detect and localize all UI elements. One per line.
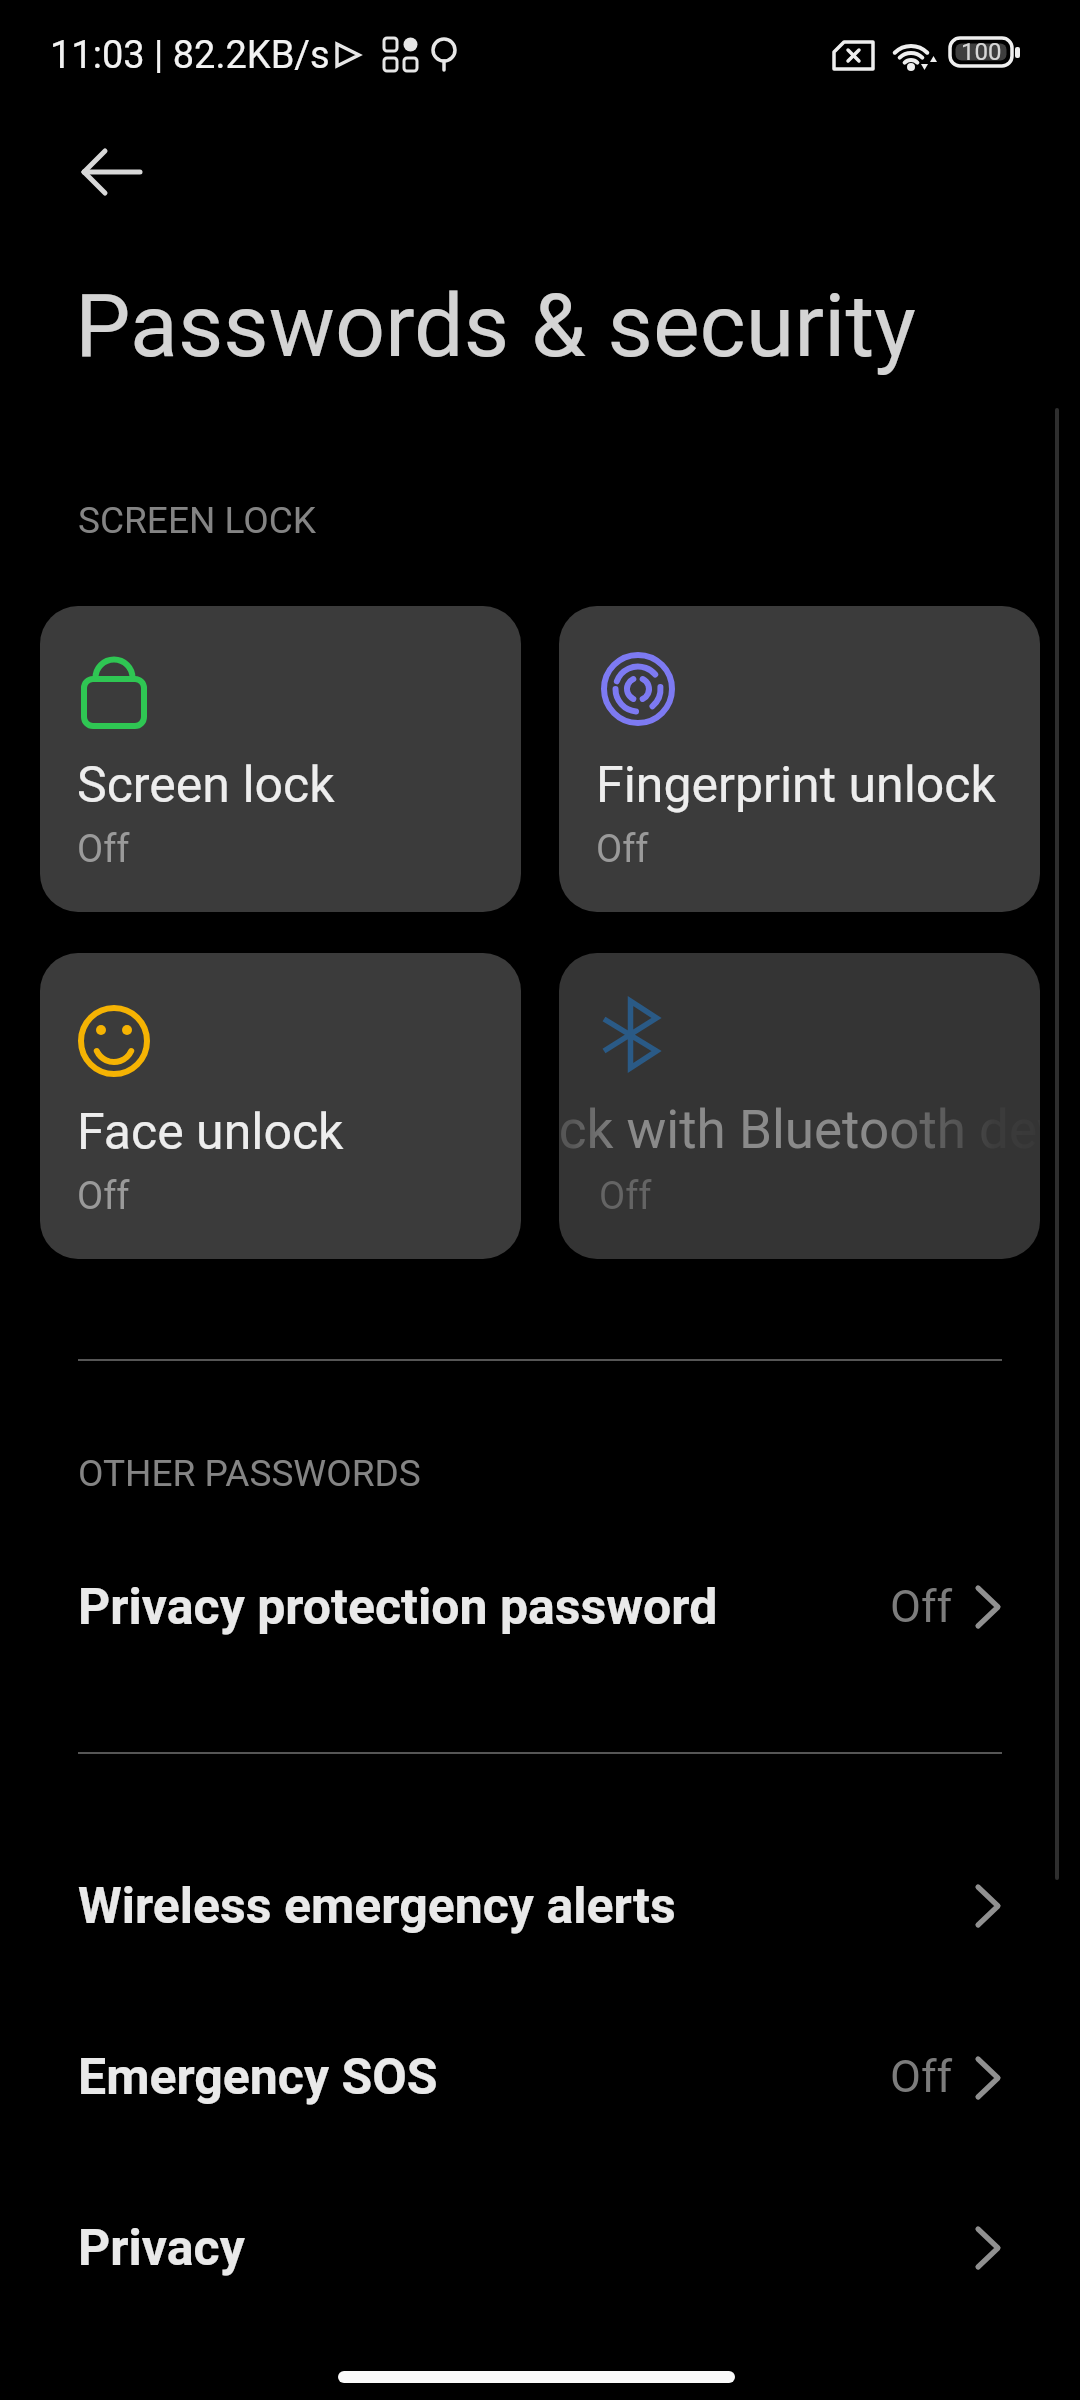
- button[interactable]: Wireless emergency alerts: [40, 1824, 1040, 1994]
- staticText: 100: [961, 38, 1002, 66]
- staticText: SCREEN LOCK: [78, 499, 316, 542]
- staticText: Passwords & security: [75, 274, 916, 377]
- staticText: Fingerprint unlock: [596, 756, 996, 815]
- staticText: OTHER PASSWORDS: [78, 1452, 421, 1495]
- staticText: Privacy: [78, 2219, 245, 2278]
- staticText: Off: [890, 2050, 953, 2103]
- staticText: Off: [77, 1174, 130, 1219]
- button[interactable]: Privacy protection password: [40, 1522, 1040, 1692]
- button[interactable]: Emergency SOS: [40, 1994, 1040, 2164]
- staticText: Off: [77, 827, 130, 872]
- staticText: Screen lock: [77, 756, 335, 815]
- staticText: Privacy protection password: [78, 1578, 718, 1637]
- button[interactable]: [60, 140, 150, 210]
- button[interactable]: Face unlock: [40, 953, 521, 1259]
- staticText: Off: [890, 1580, 953, 1633]
- button[interactable]: Privacy: [40, 2164, 1040, 2334]
- button[interactable]: Fingerprint unlock: [559, 606, 1040, 912]
- staticText: Unlock with Bluetooth device: [559, 1099, 1040, 1161]
- staticText: Emergency SOS: [78, 2048, 438, 2107]
- staticText: Face unlock: [77, 1103, 344, 1162]
- staticText: Off: [596, 827, 649, 872]
- button[interactable]: Unlock with Bluetooth device: [559, 953, 1040, 1259]
- staticText: Off: [599, 1174, 652, 1219]
- staticText: 11:03 | 82.2KB/s: [50, 33, 330, 78]
- staticText: Wireless emergency alerts: [78, 1877, 676, 1936]
- button[interactable]: Screen lock: [40, 606, 521, 912]
